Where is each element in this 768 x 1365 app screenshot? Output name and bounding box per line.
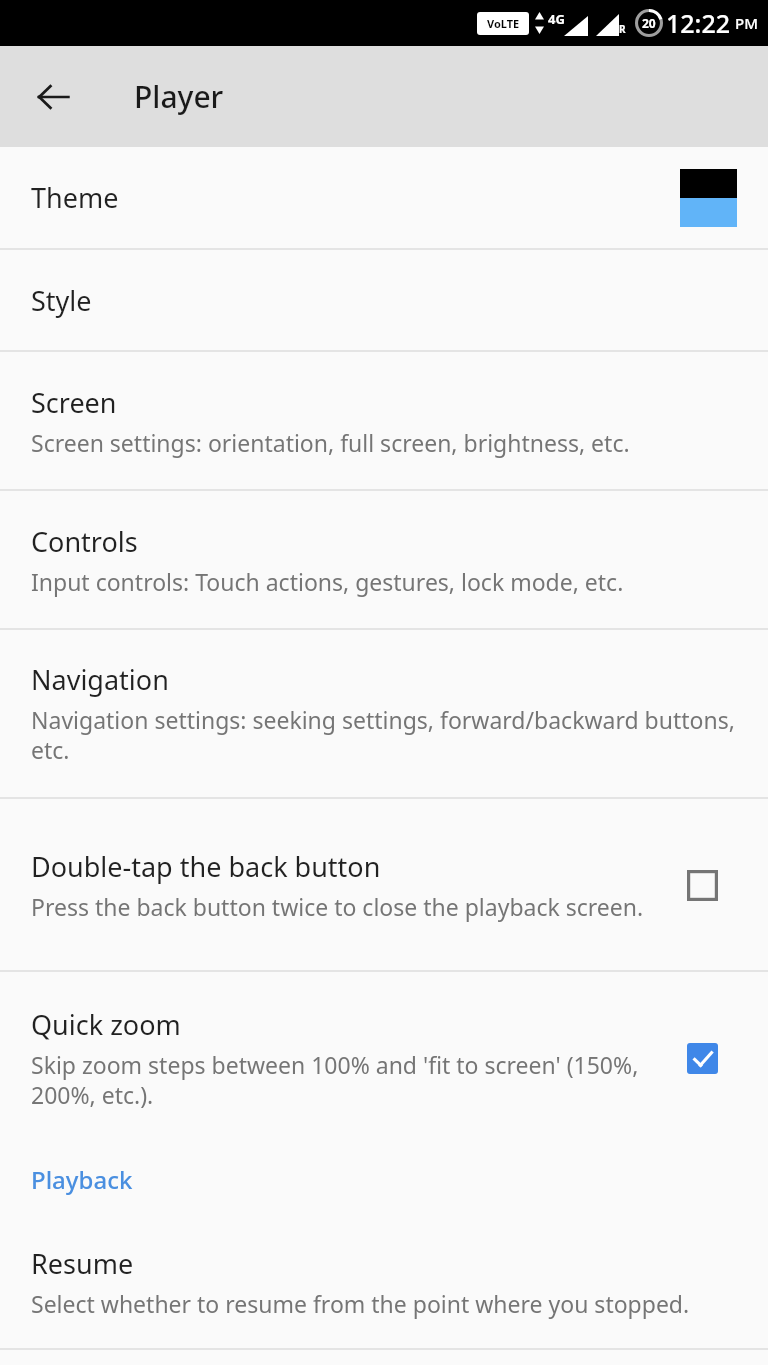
staticText: Playback [31, 1163, 133, 1196]
button[interactable]: Double-tap the back button [0, 799, 768, 970]
staticText: Navigation [31, 661, 169, 698]
staticText: 20 [642, 15, 656, 31]
staticText: Navigation settings: seeking settings, f… [31, 704, 756, 766]
button[interactable]: Style [0, 250, 768, 350]
staticText: R [619, 22, 626, 36]
staticText: Double-tap the back button [31, 848, 381, 885]
staticText: Skip zoom steps between 100% and 'fit to… [31, 1049, 668, 1111]
staticText: Press the back button twice to close the… [31, 891, 644, 922]
staticText: Style [31, 282, 92, 319]
staticText: Theme [31, 179, 119, 216]
button[interactable]: Navigation [0, 630, 768, 797]
staticText: VoLTE [487, 16, 520, 31]
staticText: 4G [548, 10, 565, 28]
button[interactable]: Theme [0, 147, 768, 248]
staticText: Screen [31, 384, 117, 421]
staticText: Player [134, 76, 224, 117]
staticText: PM [735, 13, 758, 33]
staticText: Select whether to resume from the point … [31, 1288, 690, 1319]
staticText: Screen settings: orientation, full scree… [31, 427, 630, 458]
staticText: Input controls: Touch actions, gestures,… [31, 566, 624, 597]
staticText: 12:22 [666, 6, 731, 40]
button[interactable]: Checked checkbox [680, 1036, 724, 1080]
button[interactable]: Screen [0, 352, 768, 489]
button[interactable]: Back [15, 59, 91, 135]
button[interactable]: Unchecked checkbox [680, 863, 724, 907]
button[interactable]: Resume [0, 1215, 768, 1348]
button[interactable]: Quick zoom [0, 972, 768, 1144]
staticText: Controls [31, 523, 138, 560]
staticText: Resume [31, 1245, 134, 1282]
staticText: Quick zoom [31, 1006, 181, 1043]
button[interactable]: Controls [0, 491, 768, 628]
